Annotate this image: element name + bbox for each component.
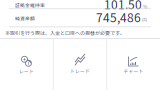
staticText: %	[142, 3, 147, 10]
staticText: チャート	[123, 67, 143, 74]
staticText: 証拠金維持率	[15, 2, 45, 9]
staticText: 745,486	[96, 8, 141, 26]
button[interactable]: チャート	[107, 39, 160, 90]
button[interactable]: トレード	[53, 39, 106, 90]
staticText: トレード	[70, 67, 90, 74]
staticText: ※取引を行う際は、入金と口座への振替が必要です。	[5, 29, 125, 36]
staticText: 円	[141, 16, 147, 23]
button[interactable]: レート	[0, 39, 53, 90]
staticText: 純資産額	[15, 15, 35, 22]
staticText: 101.50	[104, 0, 142, 13]
staticText: レート	[19, 68, 34, 75]
